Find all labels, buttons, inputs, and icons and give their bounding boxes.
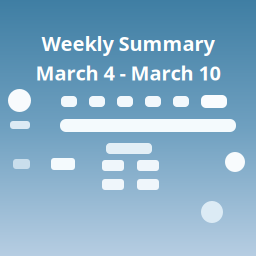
- button[interactable]: Mon: [61, 96, 77, 107]
- button[interactable]: Today: [201, 95, 227, 108]
- button[interactable]: Fri: [173, 96, 189, 107]
- button[interactable]: Wed: [117, 96, 133, 107]
- staticText: Weekly Summary: [41, 30, 214, 57]
- button[interactable]: Add Entry: [225, 152, 245, 172]
- button[interactable]: Profile: [8, 89, 31, 112]
- button[interactable]: More Options: [201, 201, 223, 223]
- staticText: March 4 - March 10: [35, 60, 220, 86]
- button[interactable]: Thu: [145, 96, 161, 107]
- button[interactable]: Tue: [89, 96, 105, 107]
